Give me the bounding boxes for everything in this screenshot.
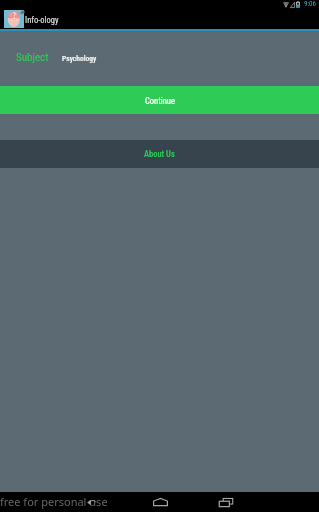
staticText: Psychology [62, 54, 97, 63]
staticText: free for personal use [0, 494, 108, 509]
button[interactable]: About Us [0, 140, 319, 168]
button[interactable]: Home [148, 492, 172, 512]
staticText: About Us [144, 149, 175, 159]
button[interactable]: Recent apps [216, 492, 236, 512]
staticText: Info-ology [25, 15, 59, 25]
button[interactable]: Back [82, 492, 100, 512]
staticText: Subject [16, 51, 49, 64]
staticText: Continue [145, 96, 175, 106]
button[interactable]: Continue [0, 86, 319, 114]
staticText: 9:06 [304, 0, 317, 8]
